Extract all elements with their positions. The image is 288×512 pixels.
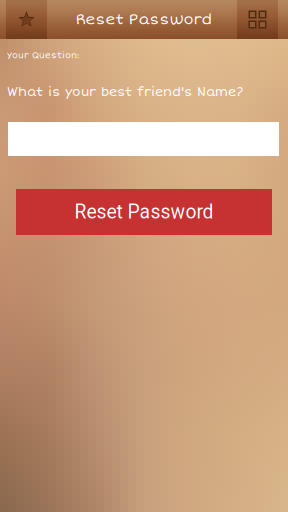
- staticText: Reset Password: [74, 201, 213, 223]
- staticText: What is your best friend's Name?: [7, 84, 243, 100]
- button[interactable]: Menu: [237, 0, 278, 39]
- staticText: Your Question:: [7, 50, 79, 61]
- staticText: Reset Password: [75, 10, 212, 29]
- button[interactable]: Favorites: [6, 0, 47, 39]
- button[interactable]: Reset Password: [16, 189, 272, 235]
